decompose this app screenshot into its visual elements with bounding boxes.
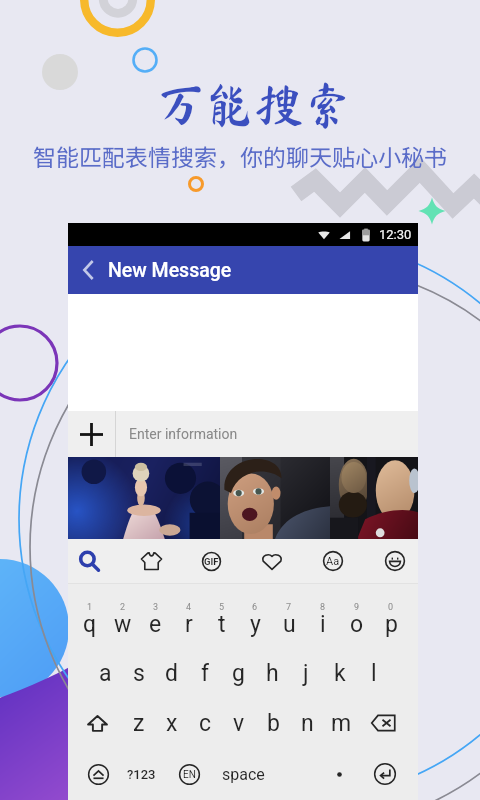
- staticText: ?123: [127, 767, 156, 782]
- button[interactable]: Period: [319, 748, 359, 800]
- staticText: o: [350, 611, 364, 638]
- staticText: j: [303, 660, 309, 687]
- staticText: r: [185, 611, 193, 638]
- button[interactable]: Shift: [73, 698, 122, 748]
- button[interactable]: d: [155, 649, 188, 698]
- staticText: y: [250, 611, 261, 638]
- button[interactable]: 6: [238, 584, 272, 649]
- button[interactable]: c: [188, 698, 222, 748]
- button[interactable]: v: [222, 698, 256, 748]
- staticText: p: [385, 611, 398, 638]
- button[interactable]: l: [357, 649, 391, 698]
- staticText: c: [199, 710, 212, 737]
- staticText: h: [266, 660, 279, 687]
- button[interactable]: b: [256, 698, 290, 748]
- button[interactable]: k: [323, 649, 357, 698]
- button[interactable]: Emoji: [369, 539, 421, 583]
- staticText: 9: [354, 602, 360, 613]
- staticText: k: [334, 660, 346, 687]
- button[interactable]: 4: [172, 584, 205, 649]
- button[interactable]: Switch language: [169, 748, 209, 800]
- staticText: 5: [219, 602, 225, 613]
- staticText: New Message: [108, 259, 232, 282]
- staticText: d: [165, 660, 178, 687]
- staticText: z: [133, 710, 145, 737]
- button[interactable]: Backspace: [358, 698, 408, 748]
- button[interactable]: Favorites: [246, 539, 298, 583]
- button[interactable]: z: [122, 698, 155, 748]
- button[interactable]: 3: [139, 584, 172, 649]
- staticText: n: [301, 710, 314, 737]
- staticText: f: [201, 660, 209, 687]
- staticText: 万能搜索: [156, 80, 353, 129]
- staticText: 8: [320, 602, 326, 613]
- staticText: m: [331, 710, 352, 737]
- staticText: q: [83, 611, 97, 638]
- button[interactable]: Add attachment: [68, 411, 115, 457]
- button[interactable]: 1: [73, 584, 106, 649]
- staticText: 12:30: [379, 227, 412, 242]
- button[interactable]: Enter: [365, 748, 405, 800]
- button[interactable]: n: [290, 698, 324, 748]
- staticText: e: [149, 611, 162, 638]
- button[interactable]: m: [324, 698, 358, 748]
- staticText: 3: [153, 602, 159, 613]
- button[interactable]: 2: [106, 584, 139, 649]
- staticText: 6: [252, 602, 258, 613]
- button[interactable]: 5: [205, 584, 238, 649]
- staticText: l: [371, 660, 377, 687]
- staticText: w: [114, 611, 132, 638]
- staticText: 1: [87, 602, 93, 613]
- staticText: 智能匹配表情搜索，你的聊天贴心小秘书: [33, 139, 447, 172]
- button[interactable]: Enter information: [129, 411, 418, 457]
- staticText: 7: [286, 602, 292, 613]
- staticText: 0: [388, 602, 394, 613]
- button[interactable]: 8: [306, 584, 340, 649]
- staticText: 2: [120, 602, 126, 613]
- button[interactable]: j: [289, 649, 323, 698]
- staticText: g: [232, 660, 245, 687]
- button[interactable]: a: [89, 649, 122, 698]
- staticText: GIF: [204, 556, 219, 567]
- button[interactable]: Stickers: [125, 539, 177, 583]
- button[interactable]: 9: [340, 584, 374, 649]
- staticText: u: [283, 611, 296, 638]
- staticText: a: [99, 660, 112, 687]
- staticText: EN: [183, 769, 196, 781]
- button[interactable]: [220, 457, 330, 539]
- button[interactable]: Hide keyboard: [78, 748, 118, 800]
- staticText: b: [267, 710, 280, 737]
- button[interactable]: [330, 457, 418, 539]
- staticText: 4: [186, 602, 192, 613]
- button[interactable]: ?123: [121, 748, 161, 800]
- staticText: space: [222, 765, 265, 784]
- staticText: v: [233, 710, 245, 737]
- staticText: i: [320, 611, 326, 638]
- button[interactable]: GIF: [185, 539, 237, 583]
- button[interactable]: g: [221, 649, 255, 698]
- staticText: Aa: [326, 555, 340, 568]
- staticText: s: [133, 660, 145, 687]
- button[interactable]: s: [122, 649, 155, 698]
- staticText: t: [218, 611, 226, 638]
- button[interactable]: 7: [272, 584, 306, 649]
- staticText: x: [166, 710, 178, 737]
- button[interactable]: [68, 457, 220, 539]
- button[interactable]: x: [155, 698, 188, 748]
- button[interactable]: h: [255, 649, 289, 698]
- button[interactable]: Text style: [307, 539, 359, 583]
- button[interactable]: f: [188, 649, 221, 698]
- button[interactable]: Back: [68, 246, 108, 294]
- button[interactable]: 0: [374, 584, 408, 649]
- staticText: Enter information: [129, 426, 238, 442]
- button[interactable]: Search: [63, 539, 115, 583]
- button[interactable]: space: [213, 748, 363, 800]
